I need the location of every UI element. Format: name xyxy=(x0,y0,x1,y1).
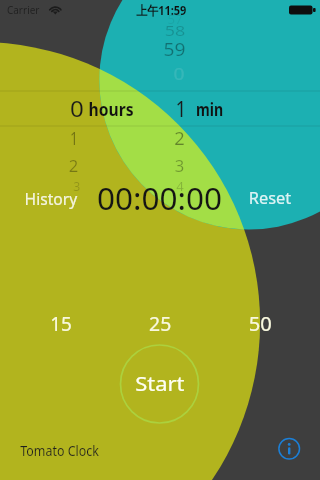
button[interactable]: Start xyxy=(120,345,199,424)
button[interactable]: Reset xyxy=(240,184,306,214)
button[interactable]: Info xyxy=(279,438,300,459)
button[interactable]: History xyxy=(10,184,90,214)
